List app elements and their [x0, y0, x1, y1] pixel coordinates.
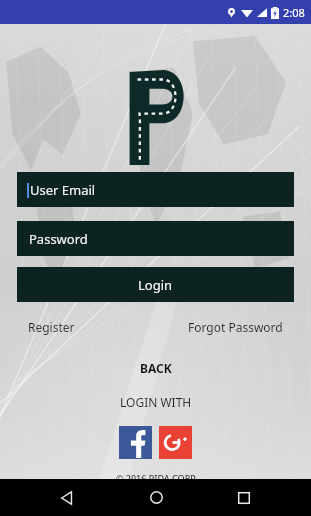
- staticText: 2:08: [283, 5, 305, 20]
- staticText: Password: [29, 230, 88, 248]
- staticText: Login: [138, 276, 173, 294]
- button[interactable]: Home: [134, 479, 178, 516]
- staticText: Register: [28, 319, 75, 335]
- staticText: BACK: [140, 360, 172, 376]
- staticText: LOGIN WITH: [120, 394, 192, 410]
- button[interactable]: Register: [28, 317, 75, 337]
- staticText: © 2016 PIDA CORP: [116, 472, 196, 479]
- button[interactable]: User Email: [17, 172, 294, 207]
- button[interactable]: Login: [17, 267, 294, 302]
- button[interactable]: Recent apps: [222, 479, 266, 516]
- staticText: User Email: [30, 181, 96, 199]
- button[interactable]: Login with Google Plus: [159, 426, 192, 459]
- button[interactable]: BACK: [124, 357, 188, 379]
- button[interactable]: Back: [45, 479, 89, 516]
- button[interactable]: Login with Facebook: [119, 426, 152, 459]
- staticText: Forgot Password: [188, 319, 283, 335]
- button[interactable]: Password: [17, 221, 294, 256]
- button[interactable]: Forgot Password: [188, 317, 283, 337]
